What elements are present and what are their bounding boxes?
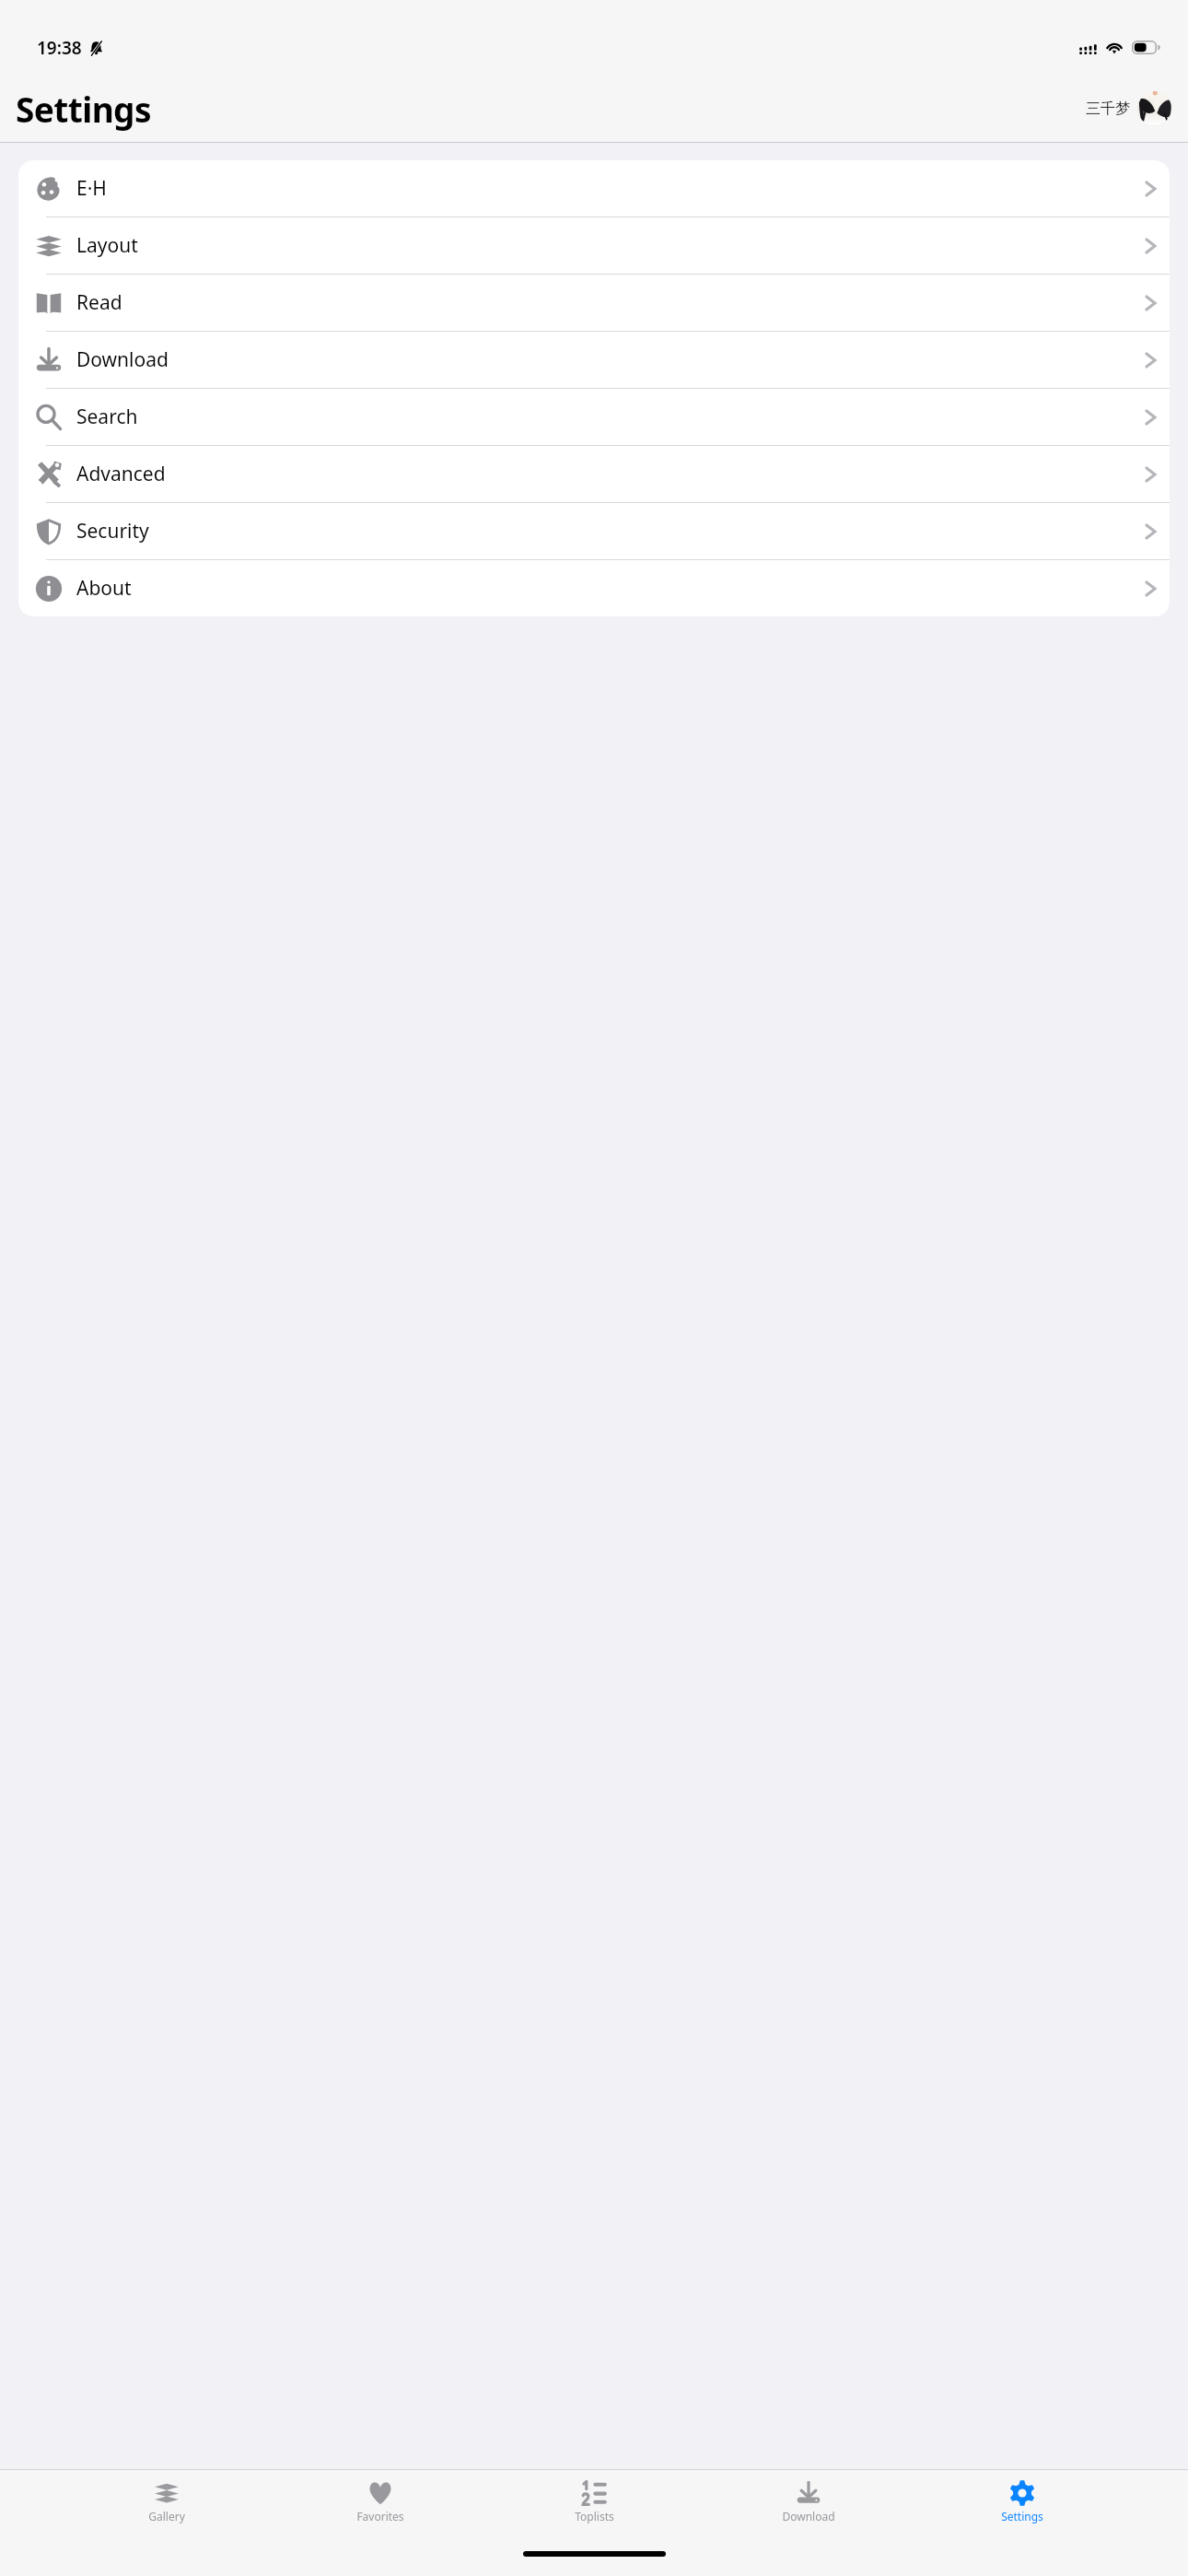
button[interactable]: Download: [18, 332, 1170, 388]
staticText: Search: [76, 404, 1145, 430]
staticText: Download: [782, 2509, 835, 2523]
staticText: Advanced: [76, 461, 1145, 487]
staticText: 19:38: [37, 36, 82, 60]
button[interactable]: Read: [18, 275, 1170, 331]
button[interactable]: Toplists: [547, 2470, 642, 2533]
button[interactable]: Layout: [18, 217, 1170, 274]
staticText: Gallery: [148, 2509, 185, 2523]
staticText: Layout: [76, 232, 1145, 259]
button[interactable]: Advanced: [18, 446, 1170, 502]
button[interactable]: Security: [18, 503, 1170, 559]
button[interactable]: Gallery: [119, 2470, 214, 2533]
button[interactable]: E·H: [18, 160, 1170, 217]
button[interactable]: Settings: [974, 2470, 1069, 2533]
staticText: About: [76, 575, 1145, 602]
button[interactable]: 三千梦: [1080, 91, 1171, 125]
staticText: Settings: [1001, 2509, 1043, 2523]
button[interactable]: Search: [18, 389, 1170, 445]
staticText: Read: [76, 289, 1145, 316]
staticText: Security: [76, 518, 1145, 544]
staticText: Favorites: [356, 2509, 404, 2523]
staticText: 三千梦: [1086, 100, 1130, 118]
button[interactable]: Download: [761, 2470, 856, 2533]
staticText: Download: [76, 346, 1145, 373]
button[interactable]: Favorites: [332, 2470, 427, 2533]
staticText: Settings: [16, 86, 151, 132]
button[interactable]: About: [18, 560, 1170, 616]
staticText: Toplists: [575, 2509, 614, 2523]
staticText: E·H: [76, 175, 1145, 202]
